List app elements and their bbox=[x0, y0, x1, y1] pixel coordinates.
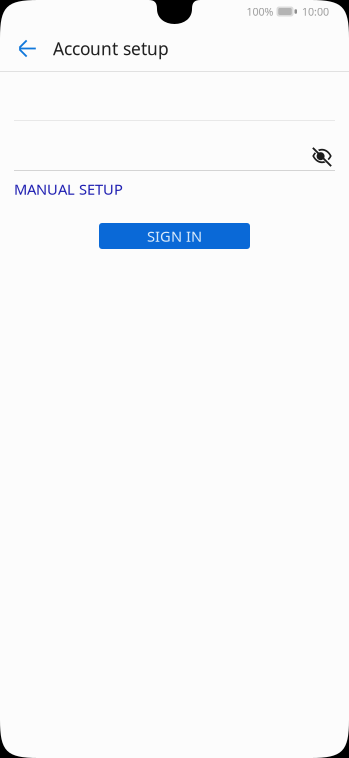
staticText: 100% bbox=[246, 4, 273, 19]
staticText: SIGN IN bbox=[147, 226, 202, 246]
staticText: MANUAL SETUP bbox=[14, 179, 123, 199]
button[interactable]: SIGN IN bbox=[99, 223, 250, 249]
staticText: Account setup bbox=[53, 37, 169, 60]
button[interactable]: MANUAL SETUP bbox=[0, 181, 349, 197]
button[interactable]: Back bbox=[15, 26, 39, 70]
staticText: 10:00 bbox=[302, 4, 329, 19]
